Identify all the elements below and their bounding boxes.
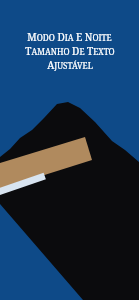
staticText: MODO DIA E NOITE bbox=[27, 30, 112, 44]
staticText: AJUSTÁVEL bbox=[47, 58, 93, 72]
staticText: TAMANHO DE TEXTO bbox=[25, 44, 115, 58]
